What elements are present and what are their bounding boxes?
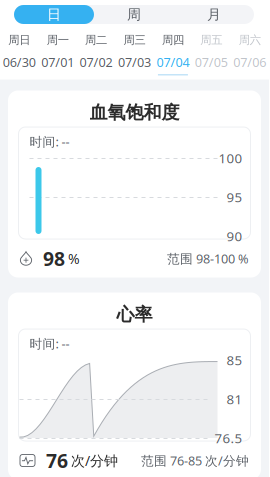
button[interactable]: 月: [174, 5, 254, 24]
button[interactable]: 周三: [115, 30, 154, 75]
staticText: 周一: [47, 33, 69, 47]
staticText: 心率: [116, 303, 152, 326]
button[interactable]: 周一: [38, 30, 77, 75]
staticText: 98: [43, 245, 65, 272]
staticText: 月: [207, 6, 221, 23]
staticText: 时间: --: [29, 335, 69, 352]
staticText: 范围 76-85 次/分钟: [141, 452, 249, 469]
staticText: 07/02: [80, 53, 113, 71]
staticText: 07/06: [233, 53, 266, 71]
staticText: 07/01: [41, 53, 74, 71]
staticText: 周四: [162, 33, 184, 47]
button[interactable]: 周五: [192, 30, 230, 75]
staticText: 07/04: [156, 53, 189, 71]
staticText: 95: [226, 188, 242, 206]
staticText: 日: [47, 6, 61, 23]
staticText: 100: [218, 149, 242, 167]
staticText: 06/30: [3, 53, 36, 71]
staticText: 76: [46, 447, 68, 474]
staticText: 范围 98-100 %: [167, 250, 249, 267]
staticText: 周二: [85, 33, 107, 47]
staticText: 周三: [123, 33, 145, 47]
button[interactable]: 周六: [231, 30, 269, 75]
staticText: 时间: --: [29, 133, 69, 150]
staticText: 81: [226, 390, 242, 408]
staticText: 07/03: [118, 53, 151, 71]
staticText: 周: [127, 6, 141, 23]
staticText: 85: [226, 351, 242, 369]
staticText: 90: [226, 227, 242, 245]
staticText: %: [68, 249, 80, 268]
staticText: 次/分钟: [71, 451, 118, 470]
staticText: 周五: [200, 33, 222, 47]
button[interactable]: 日: [14, 5, 94, 24]
staticText: 血氧饱和度: [89, 101, 179, 124]
staticText: 周日: [8, 33, 30, 47]
button[interactable]: 周四: [154, 30, 192, 75]
staticText: 07/05: [195, 53, 228, 71]
button[interactable]: 周: [94, 5, 174, 24]
button[interactable]: 周日: [0, 30, 38, 75]
button[interactable]: 周二: [77, 30, 115, 75]
staticText: 周六: [239, 33, 261, 47]
staticText: 76.5: [214, 429, 242, 447]
